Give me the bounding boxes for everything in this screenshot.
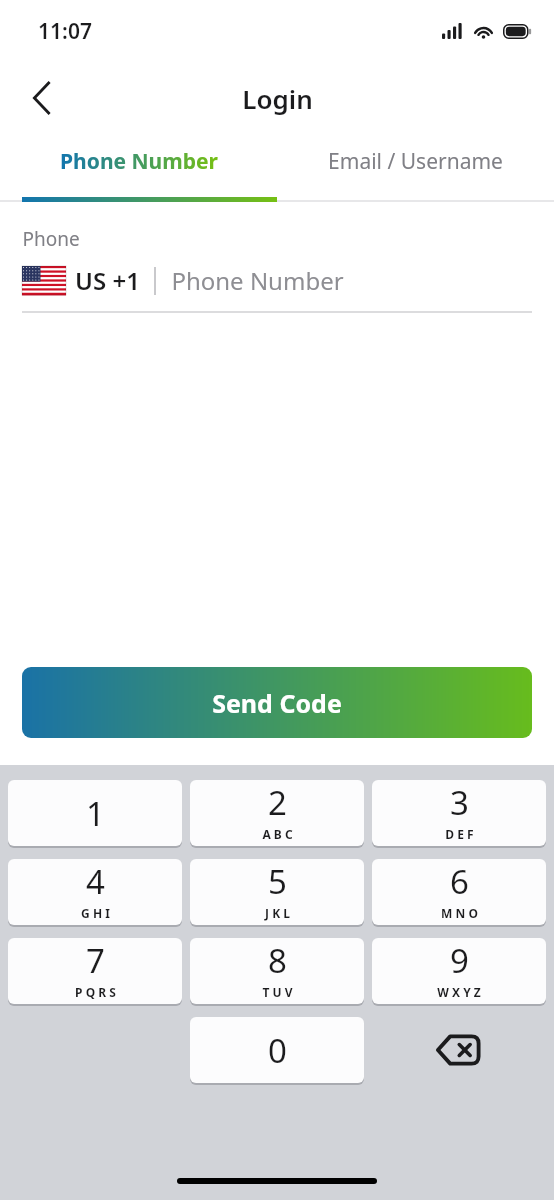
button[interactable]: 6 <box>372 859 546 925</box>
button[interactable]: US +1 <box>22 264 140 297</box>
button[interactable]: 8 <box>190 938 364 1004</box>
button[interactable]: Send Code <box>22 667 532 738</box>
staticText: A B C <box>262 826 293 842</box>
button[interactable]: 7 <box>8 938 182 1004</box>
staticText: T U V <box>262 984 293 1000</box>
staticText: M N O <box>441 905 478 921</box>
button[interactable]: 4 <box>8 859 182 925</box>
button[interactable]: 0 <box>190 1017 364 1083</box>
staticText: G H I <box>81 905 110 921</box>
button[interactable]: Back <box>16 73 66 123</box>
button[interactable]: 2 <box>190 780 364 846</box>
staticText: Phone <box>22 226 80 252</box>
staticText: Email / Username <box>328 147 503 176</box>
staticText: Login <box>242 81 313 116</box>
staticText: 8 <box>268 938 287 983</box>
staticText: 7 <box>86 938 105 983</box>
staticText: 11:07 <box>38 17 92 46</box>
button[interactable]: 1 <box>8 780 182 846</box>
staticText: W X Y Z <box>437 984 481 1000</box>
staticText: 5 <box>268 859 287 904</box>
staticText: 2 <box>268 780 287 825</box>
staticText: 9 <box>450 938 469 983</box>
staticText: 3 <box>450 780 469 825</box>
staticText: US +1 <box>75 264 140 297</box>
button[interactable]: Phone Number <box>0 134 277 202</box>
button[interactable]: 5 <box>190 859 364 925</box>
staticText: 4 <box>86 859 105 904</box>
button[interactable]: Backspace <box>372 1017 546 1083</box>
staticText: 1 <box>86 791 105 836</box>
staticText: Phone Number <box>60 147 218 176</box>
staticText: P Q R S <box>75 984 116 1000</box>
staticText: J K L <box>265 905 290 921</box>
staticText: D E F <box>445 826 474 842</box>
button[interactable]: 3 <box>372 780 546 846</box>
button[interactable]: Email / Username <box>277 134 554 202</box>
staticText: Phone Number <box>171 264 344 297</box>
staticText: 6 <box>450 859 469 904</box>
staticText: Send Code <box>212 686 342 720</box>
button[interactable]: 9 <box>372 938 546 1004</box>
staticText: 0 <box>268 1028 287 1073</box>
